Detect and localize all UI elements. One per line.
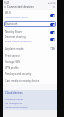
staticText: Cloud devices (5, 91, 23, 95)
staticText: 9:41 (4, 1, 10, 5)
button[interactable]: Toggle (50, 14, 55, 17)
button[interactable]: Cast media to nearby device (3, 78, 57, 83)
staticText: HomeNetwork_5GHz (5, 16, 28, 19)
button[interactable]: Wi-Fi (3, 11, 57, 19)
staticText: Storage 58% (5, 60, 21, 64)
staticText: Living Room Display (5, 105, 28, 108)
button[interactable]: Airplane mode (3, 44, 57, 53)
button[interactable]: Search (52, 5, 56, 9)
button[interactable]: Bluetooth (4, 21, 56, 27)
staticText: Internet sharing (5, 35, 26, 39)
button[interactable]: Back (3, 5, 7, 9)
staticText: Cast media to nearby device (5, 79, 40, 83)
button[interactable]: Toggle (50, 23, 55, 26)
staticText: Passkeys and security (5, 72, 32, 76)
staticText: HP LaserJet Pro (5, 101, 23, 104)
staticText: Samsung Tablet (5, 97, 23, 100)
staticText: Print service (5, 54, 20, 58)
button[interactable]: Print service (3, 53, 57, 58)
button[interactable]: Toggle (50, 31, 55, 34)
staticText: Share mobile connection (5, 40, 32, 43)
button[interactable]: Internet sharing (3, 35, 57, 43)
staticText: Connected devices (7, 5, 34, 9)
button[interactable]: Toggle (50, 38, 55, 41)
button[interactable]: Passkeys and security (3, 71, 57, 76)
staticText: Wi-Fi (5, 11, 12, 15)
button[interactable]: Toggle (50, 47, 55, 50)
button[interactable]: Storage 58% (3, 59, 57, 64)
staticText: Bluetooth (5, 22, 18, 26)
button[interactable]: Nearby Share (3, 29, 57, 35)
staticText: VPN profile (5, 66, 19, 70)
staticText: Nearby Share (5, 30, 23, 34)
staticText: Airplane mode (5, 47, 24, 51)
button[interactable]: VPN profile (3, 65, 57, 70)
